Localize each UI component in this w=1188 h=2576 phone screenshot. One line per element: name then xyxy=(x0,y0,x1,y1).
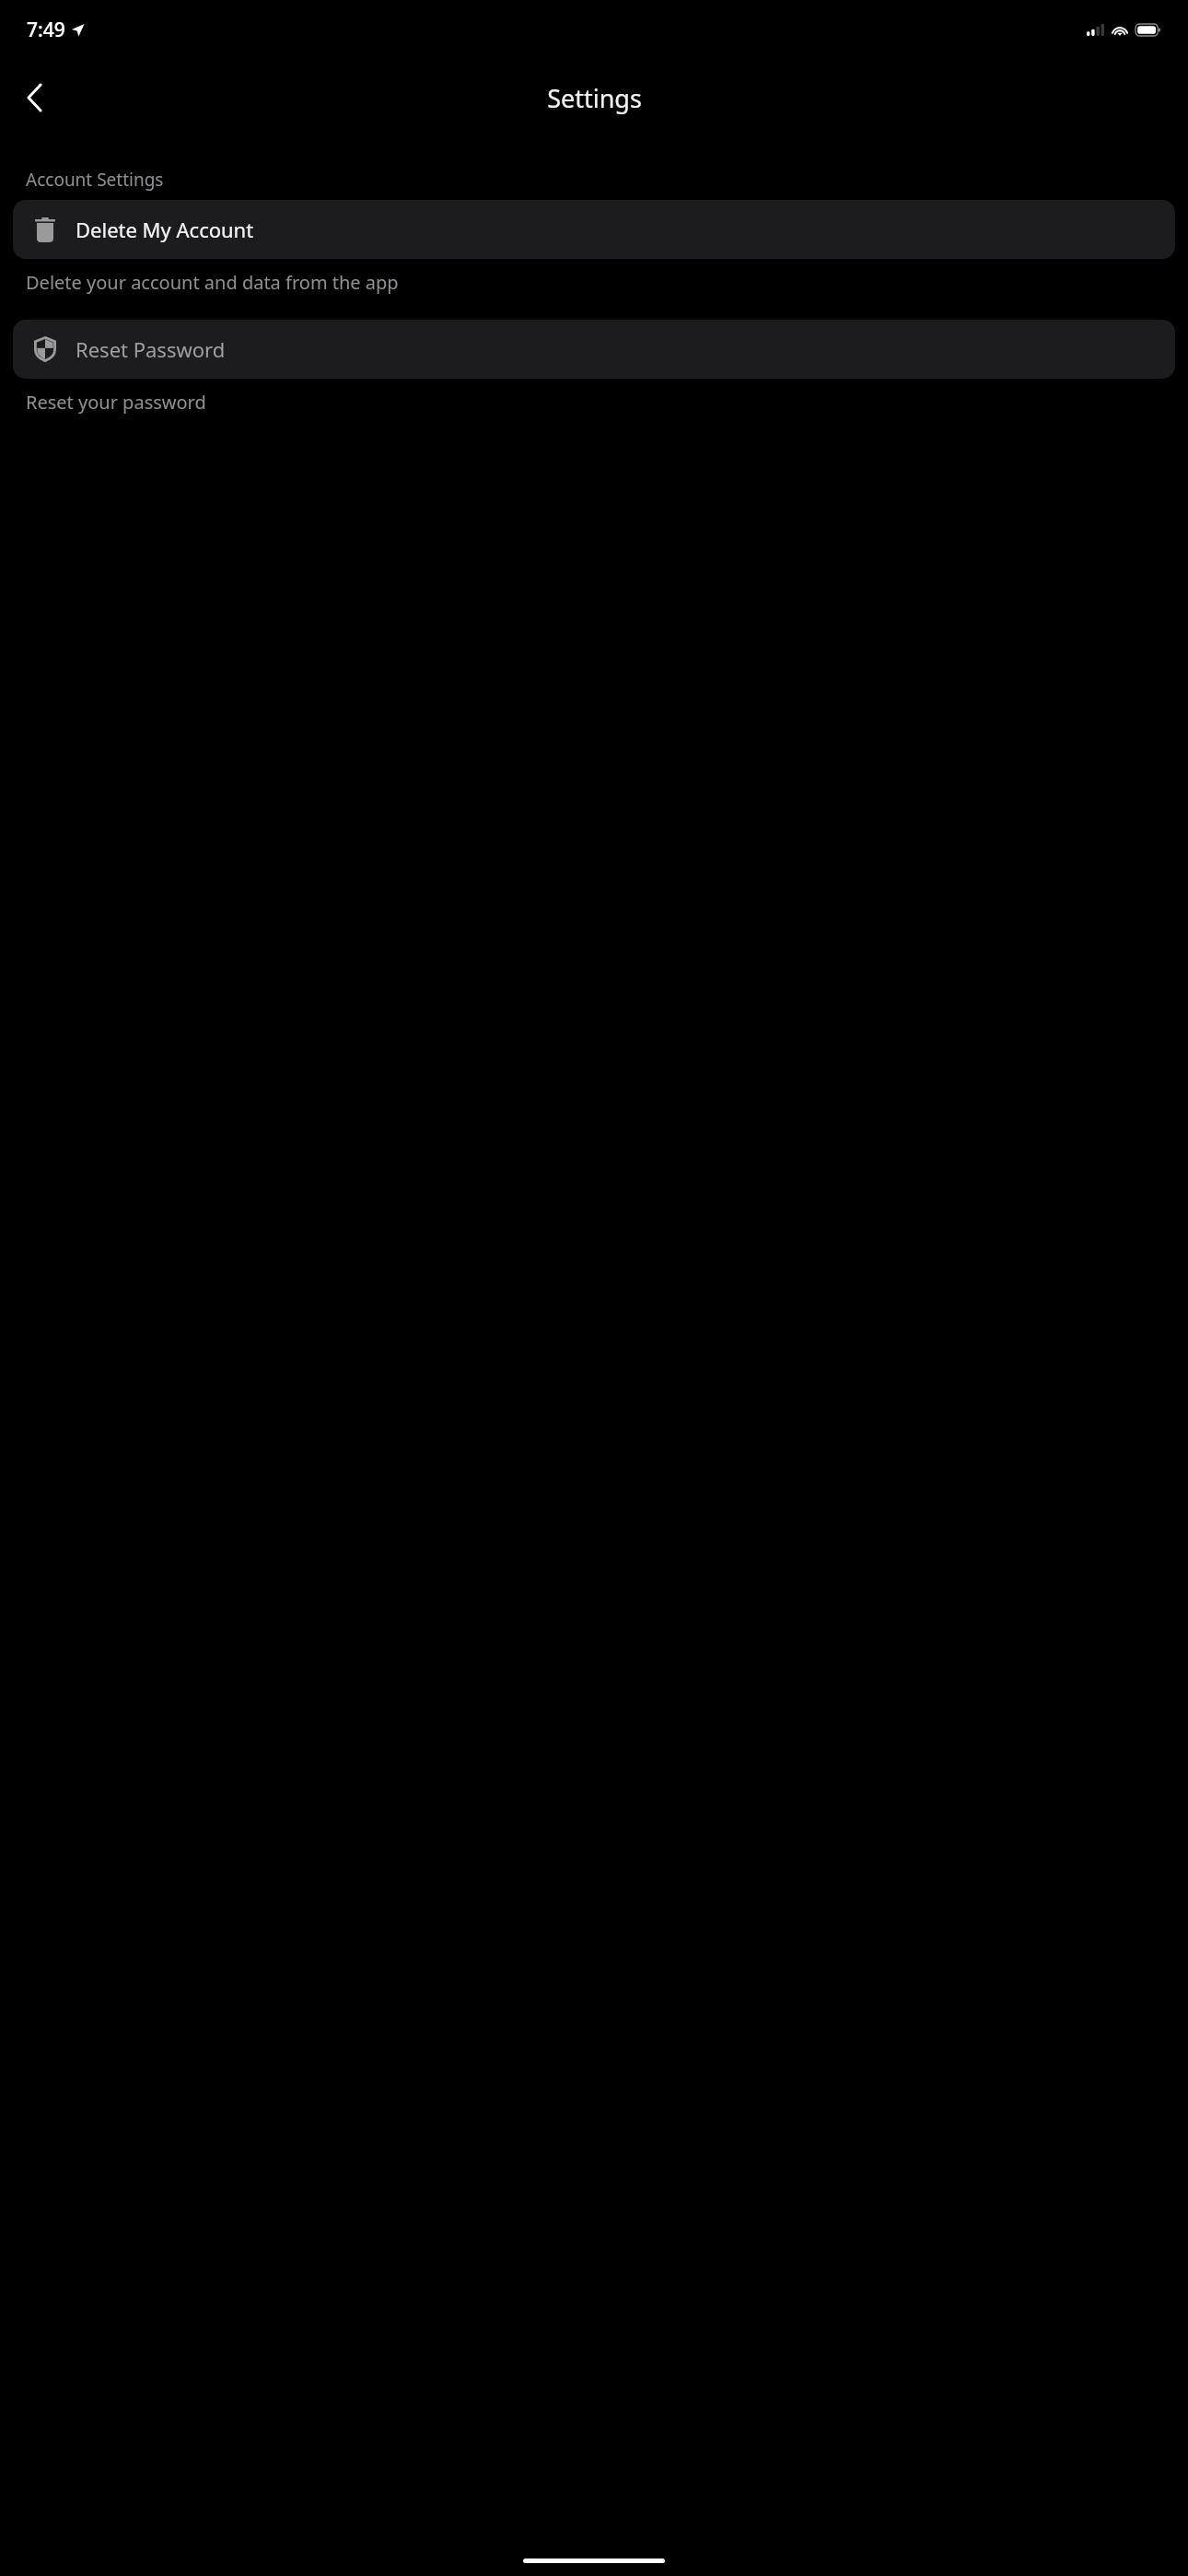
staticText: Reset Password xyxy=(76,335,226,363)
button[interactable]: Reset Password xyxy=(13,320,1175,379)
staticText: Reset your password xyxy=(26,390,206,415)
button[interactable]: Back xyxy=(11,74,59,122)
staticText: 7:49 xyxy=(27,17,65,43)
staticText: Delete your account and data from the ap… xyxy=(26,270,399,295)
staticText: Account Settings xyxy=(26,168,164,192)
button[interactable]: Delete My Account xyxy=(13,200,1175,259)
staticText: Delete My Account xyxy=(76,216,254,243)
staticText: Settings xyxy=(547,81,642,115)
